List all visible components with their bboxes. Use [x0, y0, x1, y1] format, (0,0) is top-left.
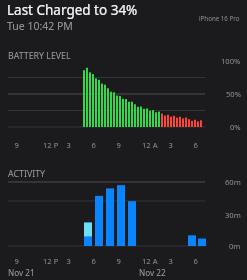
button[interactable]: Battery level and activity chart: [0, 0, 247, 280]
